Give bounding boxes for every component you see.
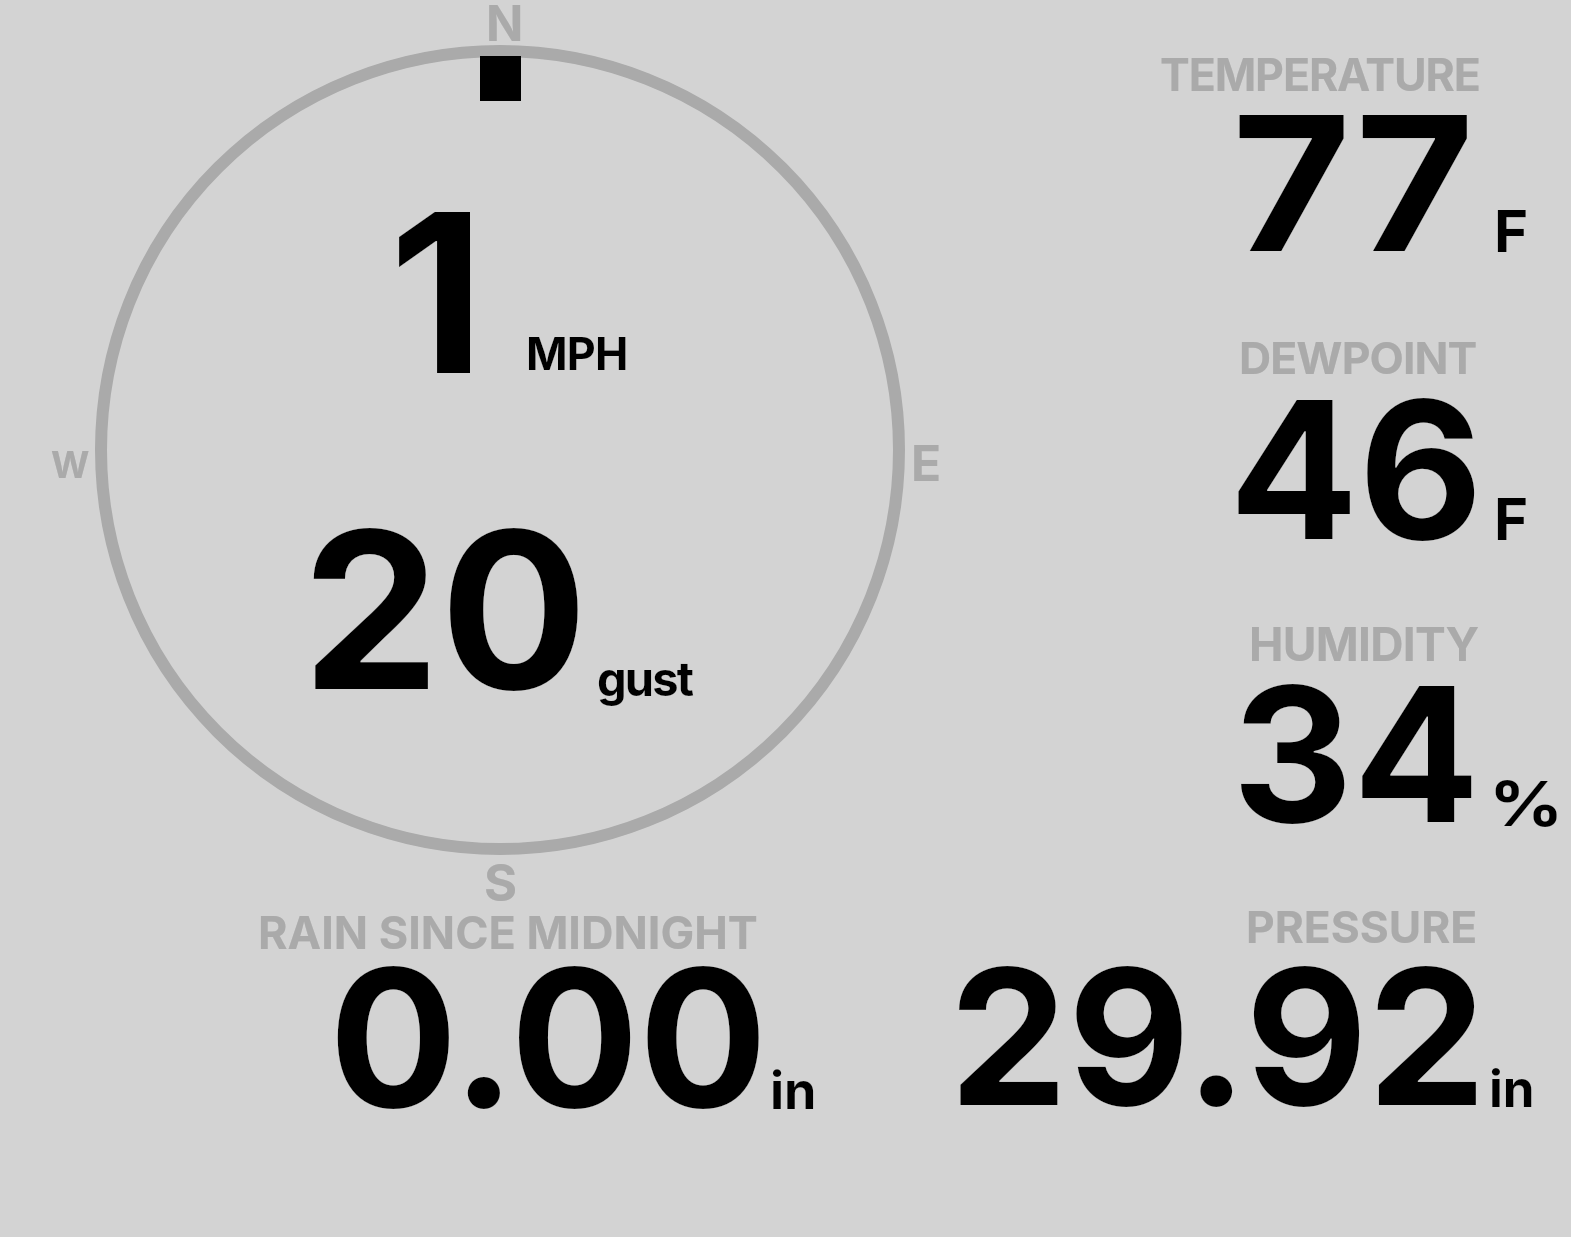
staticText: W <box>51 442 90 487</box>
staticText: 77 <box>1232 70 1475 297</box>
staticText: in <box>770 1059 817 1122</box>
button[interactable]: Rain since midnight 0.00 inches <box>250 900 830 1115</box>
staticText: gust <box>597 650 692 707</box>
staticText: 34 <box>1232 641 1480 868</box>
button[interactable]: Wind direction compass, 1 MPH, gusting 2… <box>95 45 905 855</box>
staticText: 46 <box>1229 353 1483 585</box>
staticText: S <box>484 852 518 913</box>
button[interactable]: Pressure 29.92 inches <box>940 895 1540 1115</box>
staticText: DEWPOINT <box>1239 331 1477 385</box>
staticText: F <box>1494 196 1529 267</box>
button[interactable]: Humidity 34 percent <box>1140 610 1570 840</box>
staticText: in <box>1489 1058 1535 1120</box>
staticText: F <box>1494 484 1529 555</box>
staticText: RAIN SINCE MIDNIGHT <box>258 905 758 959</box>
button[interactable]: Temperature 77 degrees F <box>1140 40 1570 270</box>
staticText: TEMPERATURE <box>1160 48 1480 102</box>
staticText: 0.00 <box>329 922 768 1153</box>
staticText: % <box>1489 766 1563 841</box>
staticText: HUMIDITY <box>1249 616 1479 672</box>
staticText: N <box>486 0 524 53</box>
staticText: 29.92 <box>949 922 1487 1150</box>
staticText: 20 <box>302 477 588 742</box>
staticText: MPH <box>526 327 628 381</box>
staticText: PRESSURE <box>1246 900 1478 954</box>
staticText: E <box>911 433 942 493</box>
staticText: 1 <box>389 158 485 426</box>
button[interactable]: Dewpoint 46 degrees F <box>1140 325 1570 555</box>
